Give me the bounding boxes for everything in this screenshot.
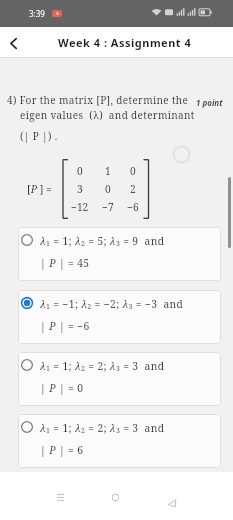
button[interactable] (160, 491, 184, 515)
staticText: | P | = −6 (40, 319, 90, 333)
staticText: λ1 = 1; λ2 = 2; λ3 = 3 and (40, 359, 165, 373)
staticText: [P ] = (27, 182, 52, 196)
staticText: 0 (130, 164, 136, 178)
staticText: 3:39 (29, 8, 45, 19)
button[interactable]: λ1 = −1; λ2 = −2; λ3 = −3 and (18, 290, 221, 344)
staticText: −6 (127, 200, 139, 214)
staticText: eigen values (λ) and determinant (20, 108, 195, 122)
staticText: λ1 = 1; λ2 = 2; λ3 = 3 and (40, 421, 165, 435)
staticText: Week 4 : Assignment 4 (58, 35, 192, 50)
button[interactable]: λ1 = 1; λ2 = 5; λ3 = 9 and (18, 227, 221, 281)
staticText: | P | = 45 (40, 256, 90, 270)
staticText: 0 (105, 182, 111, 196)
button[interactable] (48, 485, 72, 509)
staticText: | P | = 6 (40, 443, 84, 457)
staticText: 1 (105, 164, 111, 178)
staticText: −12 (71, 200, 89, 214)
staticText: 2 (130, 182, 136, 196)
staticText: | P | = 0 (40, 381, 84, 395)
staticText: (| P |) . (20, 129, 58, 143)
staticText: λ1 = −1; λ2 = −2; λ3 = −3 and (40, 297, 184, 311)
staticText: λ1 = 1; λ2 = 5; λ3 = 9 and (40, 234, 165, 248)
staticText: 0 (77, 164, 83, 178)
staticText: 1 point (196, 97, 223, 108)
staticText: 4) For the matrix [P], determine the (7, 93, 189, 107)
staticText: −7 (102, 200, 114, 214)
staticText: 3 (77, 182, 83, 196)
button[interactable] (103, 485, 127, 509)
button[interactable] (1, 31, 25, 55)
button[interactable]: λ1 = 1; λ2 = 2; λ3 = 3 and (18, 414, 221, 468)
button[interactable]: λ1 = 1; λ2 = 2; λ3 = 3 and (18, 352, 221, 406)
